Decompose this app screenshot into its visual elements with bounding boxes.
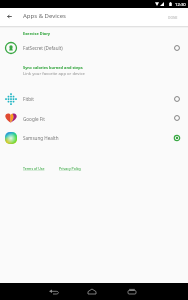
staticText: FatSecret (Default) — [23, 45, 63, 51]
button[interactable] — [0, 110, 188, 127]
button[interactable]: Recent apps — [120, 283, 144, 300]
staticText: Fitbit — [23, 96, 34, 102]
staticText: 12:30 — [175, 2, 186, 8]
staticText: Google Fit — [23, 116, 45, 122]
staticText: Sync calories burned and steps — [23, 65, 83, 70]
staticText: Terms of Use — [23, 166, 45, 171]
button[interactable] — [0, 90, 188, 107]
button[interactable]: Privacy Policy — [59, 166, 82, 171]
button[interactable] — [0, 129, 188, 146]
button[interactable]: Terms of Use — [23, 166, 45, 171]
staticText: Exercise Diary — [23, 31, 51, 36]
button[interactable]: Home — [80, 283, 104, 300]
button[interactable]: DONE — [162, 8, 183, 26]
staticText: Samsung Health — [23, 135, 59, 141]
button[interactable] — [0, 40, 188, 56]
staticText: Link your favorite app or device — [23, 71, 85, 77]
staticText: DONE — [168, 15, 178, 19]
staticText: Privacy Policy — [59, 166, 82, 171]
staticText: Apps & Devices — [23, 12, 66, 20]
button[interactable]: Back — [1, 8, 17, 24]
button[interactable]: Back — [42, 283, 66, 300]
